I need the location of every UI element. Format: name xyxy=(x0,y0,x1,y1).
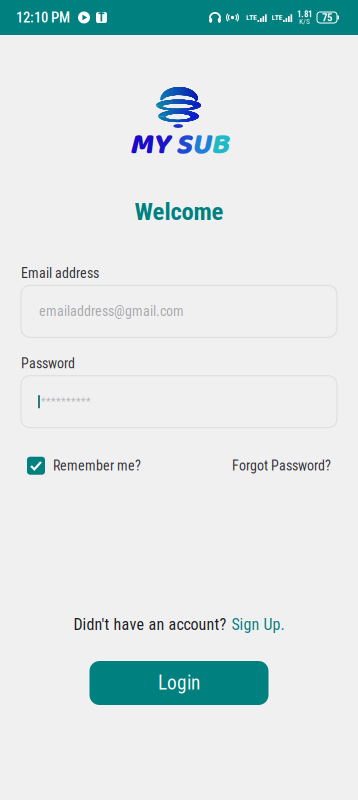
staticText: 1.81 xyxy=(297,9,312,19)
staticText: 12:10 PM xyxy=(16,9,70,26)
staticText: emailaddress@gmail.com xyxy=(39,303,184,319)
button[interactable]: Sign Up. xyxy=(231,615,284,634)
staticText: Sign Up. xyxy=(231,615,284,634)
staticText: K/S xyxy=(299,17,310,26)
button[interactable]: Forgot Password? xyxy=(232,457,331,474)
staticText: Welcome xyxy=(134,197,223,226)
staticText: Didn't have an account? xyxy=(73,615,226,634)
staticText: U xyxy=(191,121,210,168)
staticText: LTE xyxy=(271,13,282,22)
staticText: B xyxy=(210,121,228,168)
button[interactable]: Remember me? xyxy=(27,457,141,475)
staticText: S xyxy=(175,121,191,168)
staticText xyxy=(169,121,175,168)
staticText: Y xyxy=(152,121,169,168)
staticText: Password xyxy=(21,355,75,372)
staticText: 75 xyxy=(322,11,332,24)
staticText: Email address xyxy=(21,265,99,281)
staticText: Remember me? xyxy=(53,457,141,474)
staticText: T xyxy=(98,10,105,25)
staticText: ********** xyxy=(41,395,91,408)
staticText: M xyxy=(129,121,152,168)
button[interactable]: Login xyxy=(89,661,268,705)
staticText: Login xyxy=(158,672,200,694)
staticText: Forgot Password? xyxy=(232,457,331,474)
staticText: LTE xyxy=(246,13,257,22)
